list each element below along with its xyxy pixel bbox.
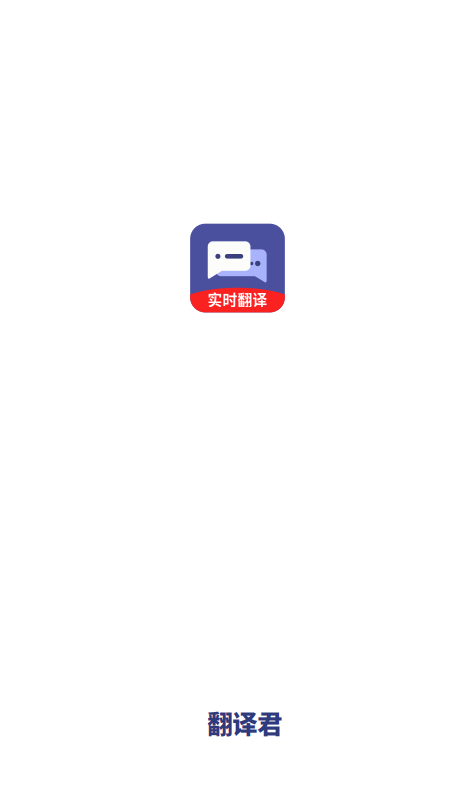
staticText: 翻译君 [207, 704, 282, 741]
staticText: 实时翻译 [207, 288, 267, 310]
